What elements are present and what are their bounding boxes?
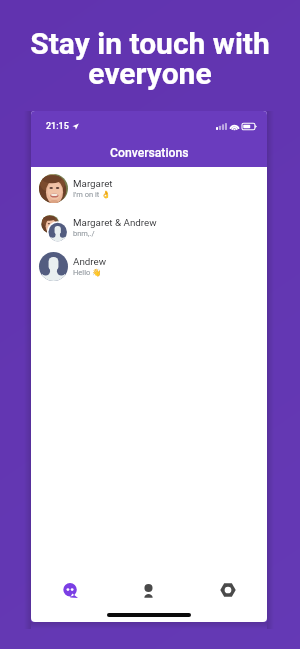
button[interactable]: Settings xyxy=(188,570,267,610)
button[interactable]: Chats xyxy=(31,570,109,610)
button[interactable]: Andrew xyxy=(31,247,267,286)
staticText: I'm on it 👌 xyxy=(73,190,111,199)
button[interactable]: People xyxy=(109,570,188,610)
button[interactable]: Margaret & Andrew xyxy=(31,208,267,247)
staticText: Hello 👋 xyxy=(73,268,102,277)
staticText: Andrew xyxy=(73,256,107,267)
staticText: Margaret xyxy=(73,178,113,189)
staticText: Margaret & Andrew xyxy=(73,217,157,228)
staticText: bnm,./ xyxy=(73,229,95,238)
staticText: Stay in touch with everyone xyxy=(30,26,270,91)
staticText: Conversations xyxy=(110,146,189,160)
button[interactable]: Margaret xyxy=(31,169,267,208)
staticText: 21:15 xyxy=(46,121,69,132)
